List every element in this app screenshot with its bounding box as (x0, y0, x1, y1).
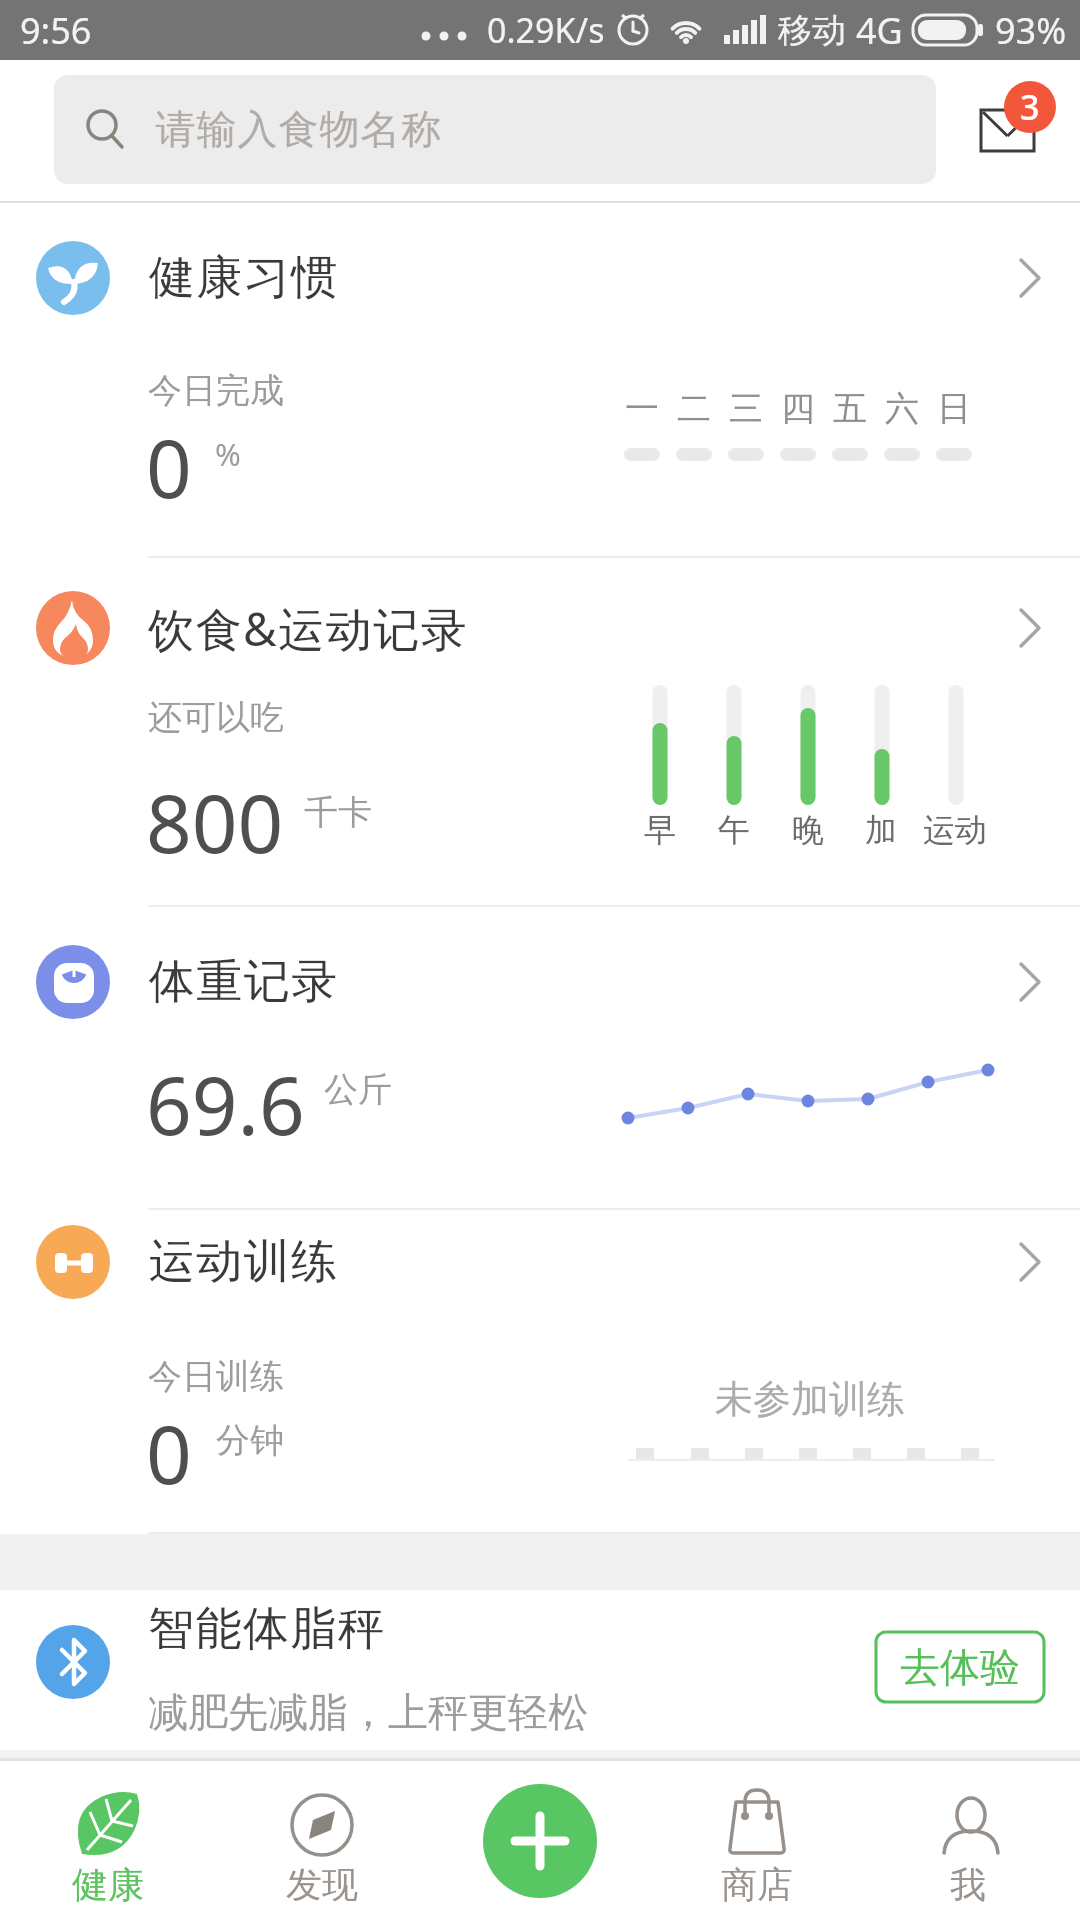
staticText: 早 (644, 810, 676, 850)
staticText: 商店 (721, 1862, 793, 1907)
staticText: 今日训练 (148, 1355, 284, 1398)
staticText: 请输入食物名称 (155, 104, 442, 154)
button[interactable] (876, 1632, 1044, 1702)
staticText: 一 (625, 387, 659, 430)
staticText: 分钟 (216, 1419, 284, 1462)
button[interactable] (0, 210, 1080, 556)
staticText: 发现 (286, 1862, 358, 1907)
staticText: 日 (937, 387, 971, 430)
staticText: 800 (146, 767, 284, 876)
staticText: 四 (781, 387, 815, 430)
button[interactable] (960, 80, 1070, 175)
button[interactable] (242, 1770, 402, 1915)
staticText: 0 (146, 412, 192, 521)
staticText: 健康 (72, 1862, 144, 1907)
button[interactable] (483, 1784, 597, 1898)
button[interactable] (0, 560, 1080, 905)
staticText: 六 (885, 387, 919, 430)
staticText: 93% (995, 6, 1067, 55)
button[interactable] (0, 1212, 1080, 1532)
staticText: 体重记录 (148, 953, 338, 1011)
staticText: 饮食&运动记录 (148, 597, 469, 660)
staticText: % (215, 433, 241, 475)
staticText: 今日完成 (148, 369, 284, 412)
staticText: 运动训练 (148, 1233, 338, 1291)
staticText: 减肥先减脂，上秤更轻松 (148, 1687, 588, 1737)
staticText: 二 (677, 387, 711, 430)
staticText: 健康习惯 (148, 249, 338, 307)
button[interactable] (28, 1770, 188, 1915)
staticText: 0.29K/s (487, 7, 605, 53)
staticText: 3 (1020, 84, 1040, 130)
staticText: 69.6 (146, 1049, 305, 1158)
staticText: 五 (833, 387, 867, 430)
button[interactable] (677, 1770, 837, 1915)
staticText: 移动 (778, 9, 846, 52)
staticText: 未参加训练 (715, 1375, 905, 1423)
staticText: 运动 (923, 810, 987, 850)
staticText: 0 (146, 1398, 192, 1507)
staticText: 智能体脂秤 (148, 1600, 386, 1658)
staticText: 公斤 (324, 1068, 392, 1111)
staticText: 去体验 (900, 1642, 1020, 1692)
button[interactable] (0, 1590, 860, 1750)
staticText: 午 (718, 810, 750, 850)
staticText: 我 (950, 1862, 986, 1907)
button[interactable] (54, 75, 936, 184)
button[interactable] (0, 910, 1080, 1208)
staticText: 三 (729, 387, 763, 430)
button[interactable] (888, 1770, 1048, 1915)
staticText: 4G (856, 6, 903, 55)
staticText: 9:56 (20, 6, 92, 55)
staticText: 千卡 (304, 791, 372, 834)
staticText: 还可以吃 (148, 696, 284, 739)
staticText: 晚 (792, 810, 824, 850)
staticText: 加 (865, 810, 897, 850)
